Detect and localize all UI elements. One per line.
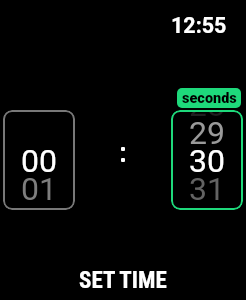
staticText: 29	[171, 114, 243, 152]
staticText: 28	[171, 110, 243, 124]
staticText: 31	[171, 170, 243, 208]
button[interactable]: SET TIME	[0, 267, 246, 297]
staticText: SET TIME	[79, 267, 167, 294]
staticText: 00	[3, 142, 75, 180]
button[interactable]: Minutes picker, 00	[3, 110, 75, 210]
button[interactable]: Seconds picker, 30	[171, 110, 243, 210]
button[interactable]: seconds	[177, 88, 241, 108]
staticText: 12:55	[171, 13, 227, 38]
staticText: 30	[171, 142, 243, 180]
staticText: seconds	[182, 90, 237, 107]
staticText: 01	[3, 170, 75, 208]
